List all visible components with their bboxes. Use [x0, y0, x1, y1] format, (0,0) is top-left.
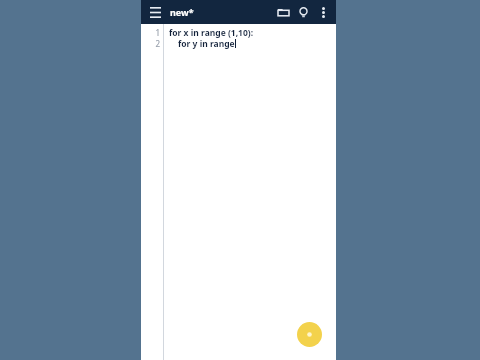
button[interactable]: Hints [293, 2, 313, 22]
staticText: new* [170, 6, 194, 18]
staticText: for x in range (1,10): [169, 27, 254, 38]
button[interactable]: Run [297, 322, 322, 347]
staticText: for y in range [178, 38, 235, 49]
staticText: 2 [155, 38, 160, 49]
button[interactable]: Open file [273, 2, 293, 22]
staticText: 1 [155, 27, 160, 38]
button[interactable]: More options [313, 2, 333, 22]
button[interactable]: Open navigation drawer [146, 3, 164, 21]
